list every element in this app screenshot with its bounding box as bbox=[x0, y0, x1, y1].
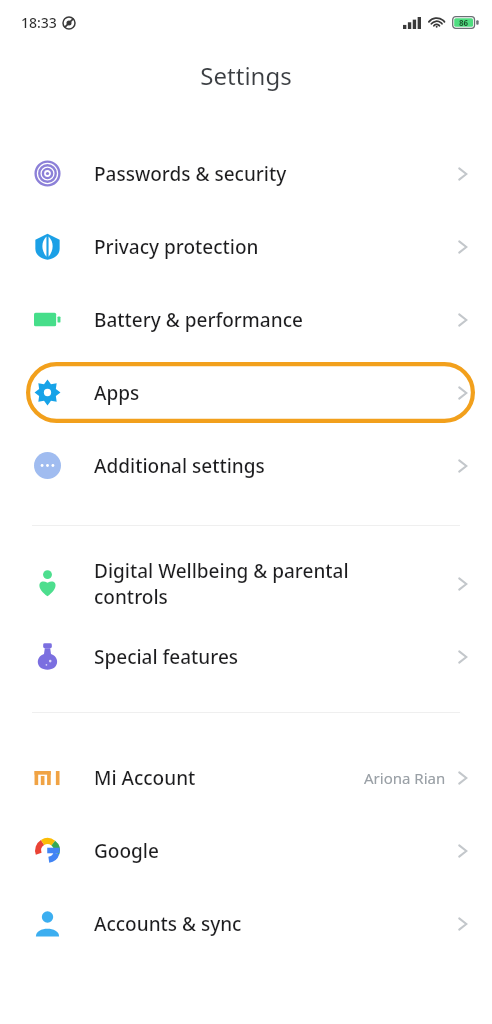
staticText: Google bbox=[94, 838, 451, 864]
other: Open Additional settings bbox=[457, 456, 468, 476]
other: Open Special features bbox=[457, 647, 468, 667]
staticText: 86 bbox=[459, 17, 469, 28]
staticText: Ariona Rian bbox=[364, 768, 446, 788]
staticText: Special features bbox=[94, 644, 451, 670]
other: Special features bbox=[34, 643, 61, 670]
other: Google bbox=[34, 837, 61, 864]
staticText: Additional settings bbox=[94, 453, 451, 479]
staticText: Apps bbox=[94, 380, 451, 406]
other: Open Google bbox=[457, 841, 468, 861]
staticText: Settings bbox=[200, 59, 292, 92]
button[interactable]: Accounts & sync bbox=[0, 887, 492, 960]
other: Digital Wellbeing bbox=[34, 570, 61, 597]
staticText: Digital Wellbeing & parental controls bbox=[94, 558, 451, 610]
other: Accounts & sync bbox=[34, 910, 61, 937]
other: Passwords & security bbox=[34, 160, 61, 187]
button[interactable]: Battery & performance bbox=[0, 283, 492, 356]
button[interactable]: Digital Wellbeing bbox=[0, 547, 492, 620]
other: Open Accounts & sync bbox=[457, 914, 468, 934]
other: Open Battery & performance bbox=[457, 310, 468, 330]
other: Open Privacy protection bbox=[457, 237, 468, 257]
button[interactable]: Special features bbox=[0, 620, 492, 693]
staticText: Mi Account bbox=[94, 765, 358, 791]
other: Additional settings bbox=[34, 452, 61, 479]
staticText: Battery & performance bbox=[94, 307, 451, 333]
other: Open Digital Wellbeing & parental contro… bbox=[457, 574, 468, 594]
other: Mi Account bbox=[34, 764, 61, 791]
button[interactable]: Passwords & security bbox=[0, 137, 492, 210]
button[interactable]: Google bbox=[0, 814, 492, 887]
other: Open Apps bbox=[457, 383, 468, 403]
button[interactable]: Additional settings bbox=[0, 429, 492, 502]
other: Open Mi Account bbox=[457, 768, 468, 788]
other: Privacy protection bbox=[34, 233, 61, 260]
staticText: Passwords & security bbox=[94, 161, 451, 187]
button[interactable]: Apps bbox=[0, 356, 492, 429]
other: Open Passwords & security bbox=[457, 164, 468, 184]
staticText: 18:33 bbox=[21, 13, 57, 32]
button[interactable]: Privacy protection bbox=[0, 210, 492, 283]
staticText: Privacy protection bbox=[94, 234, 451, 260]
other: Apps bbox=[34, 379, 61, 406]
staticText: Accounts & sync bbox=[94, 911, 451, 937]
other: Battery & performance bbox=[34, 306, 61, 333]
button[interactable]: Mi Account bbox=[0, 741, 492, 814]
